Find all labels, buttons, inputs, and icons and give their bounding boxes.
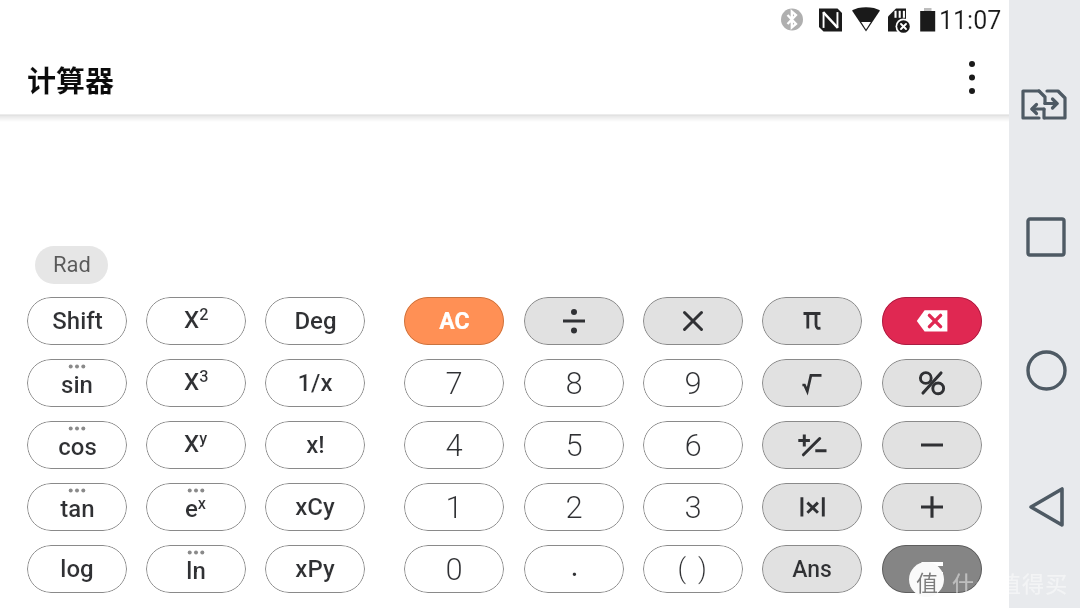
button[interactable]: 7 xyxy=(404,359,504,407)
button[interactable]: 1 xyxy=(404,483,504,531)
button[interactable]: 6 xyxy=(643,421,743,469)
staticText: X2 xyxy=(184,305,209,334)
staticText: . xyxy=(570,547,579,583)
button[interactable]: log xyxy=(27,545,127,593)
staticText: 什么值得买 xyxy=(952,566,1069,598)
staticText: 2 xyxy=(565,489,583,525)
button[interactable]: Shift xyxy=(27,297,127,345)
staticText: 8 xyxy=(565,365,583,401)
button[interactable]: 0 xyxy=(404,545,504,593)
button[interactable]: Back xyxy=(1015,473,1077,535)
button[interactable]: . xyxy=(524,545,624,593)
staticText: 计算器 xyxy=(27,58,115,100)
staticText: 1/x xyxy=(297,369,333,397)
staticText: xCy xyxy=(295,493,335,521)
button[interactable]: xCy xyxy=(265,483,365,531)
staticText: AC xyxy=(439,308,470,335)
button[interactable]: Multiply xyxy=(643,297,743,345)
button[interactable]: 9 xyxy=(643,359,743,407)
button[interactable]: 4 xyxy=(404,421,504,469)
button[interactable]: Absolute value xyxy=(762,483,862,531)
button[interactable]: 5 xyxy=(524,421,624,469)
button[interactable]: Recents xyxy=(1015,206,1077,268)
button[interactable]: Deg xyxy=(265,297,365,345)
button[interactable]: AC xyxy=(404,297,504,345)
staticText: Ans xyxy=(792,556,832,583)
button[interactable]: 1/x xyxy=(265,359,365,407)
staticText: log xyxy=(60,555,94,583)
button[interactable]: Minus xyxy=(882,421,982,469)
button[interactable]: X xyxy=(146,297,246,345)
button[interactable]: Pi xyxy=(762,297,862,345)
staticText: cos xyxy=(58,433,97,461)
staticText: 6 xyxy=(684,427,702,463)
button[interactable]: ln xyxy=(146,545,246,593)
staticText: tan xyxy=(60,495,95,523)
button[interactable]: 8 xyxy=(524,359,624,407)
button[interactable]: Equals xyxy=(882,545,982,593)
staticText: ex xyxy=(185,494,207,523)
button[interactable]: Plus minus xyxy=(762,421,862,469)
staticText: sin xyxy=(61,371,93,399)
staticText: Rad xyxy=(53,252,91,278)
button[interactable]: Square root xyxy=(762,359,862,407)
button[interactable]: 2 xyxy=(524,483,624,531)
button[interactable]: X xyxy=(146,359,246,407)
button[interactable]: Percent xyxy=(882,359,982,407)
staticText: x! xyxy=(306,431,325,459)
button[interactable]: Backspace xyxy=(882,297,982,345)
staticText: ln xyxy=(186,557,206,585)
button[interactable]: 3 xyxy=(643,483,743,531)
staticText: 值 xyxy=(916,565,939,597)
staticText: 7 xyxy=(445,365,463,401)
button[interactable]: sin xyxy=(27,359,127,407)
staticText: xPy xyxy=(295,555,335,583)
button[interactable]: Divide xyxy=(524,297,624,345)
staticText: Xy xyxy=(184,429,208,458)
staticText: Shift xyxy=(52,307,103,335)
staticText: 9 xyxy=(684,365,702,401)
button[interactable]: tan xyxy=(27,483,127,531)
button[interactable]: More options xyxy=(948,53,996,101)
button[interactable]: Ans xyxy=(762,545,862,593)
staticText: 4 xyxy=(445,427,463,463)
button[interactable]: xPy xyxy=(265,545,365,593)
button[interactable]: Home xyxy=(1015,339,1077,401)
staticText: ( ) xyxy=(677,553,710,585)
staticText: 0 xyxy=(445,551,463,587)
staticText: 1 xyxy=(445,489,463,525)
button[interactable]: e xyxy=(146,483,246,531)
button[interactable]: x! xyxy=(265,421,365,469)
button[interactable]: ( ) xyxy=(643,545,743,593)
staticText: 11:07 xyxy=(939,6,1002,35)
button[interactable]: Rad xyxy=(35,246,108,284)
button[interactable]: X xyxy=(146,421,246,469)
button[interactable]: cos xyxy=(27,421,127,469)
staticText: Deg xyxy=(294,307,337,335)
button[interactable]: Plus xyxy=(882,483,982,531)
button[interactable]: Capture and swap xyxy=(1019,86,1069,136)
staticText: 5 xyxy=(565,427,583,463)
staticText: 3 xyxy=(684,489,702,525)
staticText: X3 xyxy=(184,367,209,396)
